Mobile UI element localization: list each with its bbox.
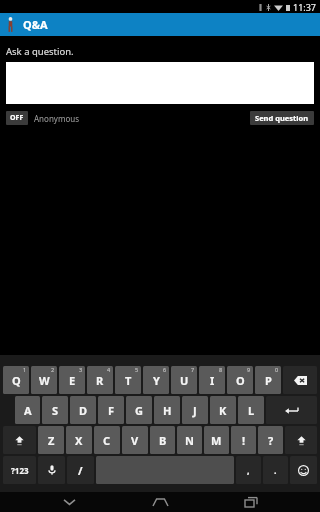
staticText: U: [180, 373, 189, 388]
button[interactable]: A: [15, 396, 40, 424]
staticText: Q: [12, 373, 21, 388]
staticText: /: [78, 463, 83, 478]
button[interactable]: E: [59, 366, 85, 394]
staticText: J: [193, 403, 197, 418]
button[interactable]: W: [31, 366, 57, 394]
button[interactable]: P: [255, 366, 281, 394]
button[interactable]: I: [199, 366, 225, 394]
staticText: K: [219, 403, 227, 418]
staticText: P: [265, 373, 272, 388]
button[interactable]: C: [94, 426, 120, 454]
button[interactable]: ,: [236, 456, 261, 484]
staticText: L: [248, 403, 255, 418]
staticText: T: [125, 373, 132, 388]
button[interactable]: !: [231, 426, 256, 454]
staticText: Z: [48, 433, 55, 448]
button[interactable]: V: [122, 426, 148, 454]
staticText: Q&A: [23, 17, 48, 32]
staticText: .: [274, 464, 277, 476]
staticText: Send question: [255, 113, 309, 123]
button[interactable]: U: [171, 366, 197, 394]
staticText: !: [242, 433, 246, 448]
button[interactable]: OFF: [6, 111, 28, 125]
staticText: 2: [51, 366, 55, 373]
staticText: E: [69, 373, 76, 388]
button[interactable]: Voice input: [38, 456, 65, 484]
staticText: Y: [153, 373, 160, 388]
button[interactable]: T: [115, 366, 141, 394]
button[interactable]: M: [204, 426, 229, 454]
button[interactable]: /: [67, 456, 94, 484]
button[interactable]: G: [126, 396, 152, 424]
staticText: S: [52, 403, 59, 418]
button[interactable]: Q: [3, 366, 29, 394]
staticText: 3: [79, 366, 83, 373]
staticText: N: [185, 433, 194, 448]
staticText: B: [159, 433, 167, 448]
staticText: I: [210, 373, 215, 388]
button[interactable]: ?: [258, 426, 283, 454]
staticText: ?: [268, 433, 274, 448]
button[interactable]: Recent apps: [229, 492, 273, 512]
staticText: 6: [163, 366, 167, 373]
button[interactable]: Send question: [250, 111, 314, 125]
staticText: D: [79, 403, 88, 418]
button[interactable]: ?123: [3, 456, 36, 484]
staticText: 8: [219, 366, 223, 373]
staticText: 11:37: [293, 1, 317, 13]
button[interactable]: K: [210, 396, 236, 424]
button[interactable]: O: [227, 366, 253, 394]
staticText: ?123: [11, 465, 29, 476]
staticText: M: [211, 433, 222, 448]
staticText: ,: [247, 464, 250, 476]
staticText: F: [108, 403, 115, 418]
staticText: Anonymous: [34, 113, 80, 124]
staticText: W: [39, 373, 50, 388]
staticText: Ask a question.: [6, 45, 74, 58]
staticText: R: [96, 373, 104, 388]
staticText: A: [24, 403, 32, 418]
button[interactable]: Backspace: [283, 366, 317, 394]
staticText: 9: [247, 366, 251, 373]
staticText: X: [75, 433, 83, 448]
button[interactable]: N: [177, 426, 202, 454]
staticText: 5: [135, 366, 139, 373]
staticText: V: [131, 433, 139, 448]
staticText: G: [135, 403, 143, 418]
button[interactable]: Enter: [266, 396, 317, 424]
staticText: H: [163, 403, 172, 418]
button[interactable]: D: [70, 396, 96, 424]
staticText: O: [236, 373, 245, 388]
staticText: 1: [23, 366, 27, 373]
staticText: C: [103, 433, 111, 448]
staticText: OFF: [10, 113, 24, 123]
button[interactable]: Hide keyboard: [47, 492, 91, 512]
button[interactable]: L: [238, 396, 264, 424]
button[interactable]: Shift: [3, 426, 36, 454]
button[interactable]: S: [42, 396, 68, 424]
button[interactable]: Y: [143, 366, 169, 394]
button[interactable]: .: [263, 456, 288, 484]
staticText: 4: [107, 366, 111, 373]
button[interactable]: Z: [38, 426, 64, 454]
button[interactable]: H: [154, 396, 180, 424]
button[interactable]: Shift: [285, 426, 317, 454]
button[interactable]: B: [150, 426, 175, 454]
button[interactable]: Emoji: [290, 456, 317, 484]
staticText: 0: [275, 366, 279, 373]
button[interactable]: R: [87, 366, 113, 394]
button[interactable]: Home: [138, 492, 182, 512]
button[interactable]: J: [182, 396, 208, 424]
button[interactable]: X: [66, 426, 92, 454]
staticText: 7: [191, 366, 195, 373]
button[interactable]: F: [98, 396, 124, 424]
